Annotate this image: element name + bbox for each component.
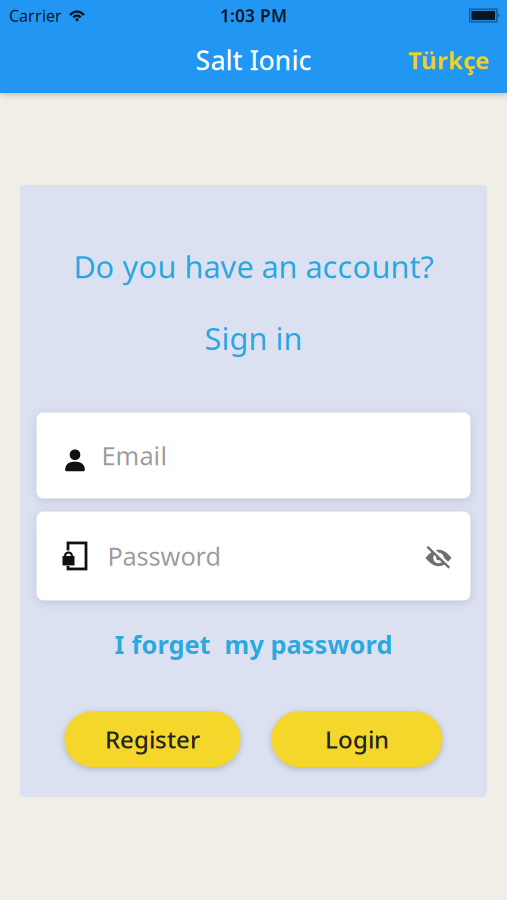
staticText: Salt Ionic — [195, 42, 311, 78]
button[interactable]: I forget my password — [114, 627, 392, 661]
button[interactable]: Türkçe — [408, 47, 489, 79]
staticText: Carrier — [9, 5, 62, 26]
staticText: Sign in — [204, 318, 302, 358]
staticText: Login — [325, 723, 389, 755]
staticText: Türkçe — [408, 44, 489, 76]
staticText: Register — [105, 723, 200, 755]
button[interactable]: Register — [64, 711, 240, 767]
staticText: 1:03 PM — [220, 4, 287, 27]
staticText: Email — [101, 439, 167, 472]
button[interactable]: Login — [271, 711, 442, 767]
staticText: Password — [107, 539, 221, 573]
staticText: Do you have an account? — [73, 246, 433, 287]
staticText: I forget my password — [114, 627, 392, 661]
button[interactable]: Show password — [425, 546, 451, 566]
